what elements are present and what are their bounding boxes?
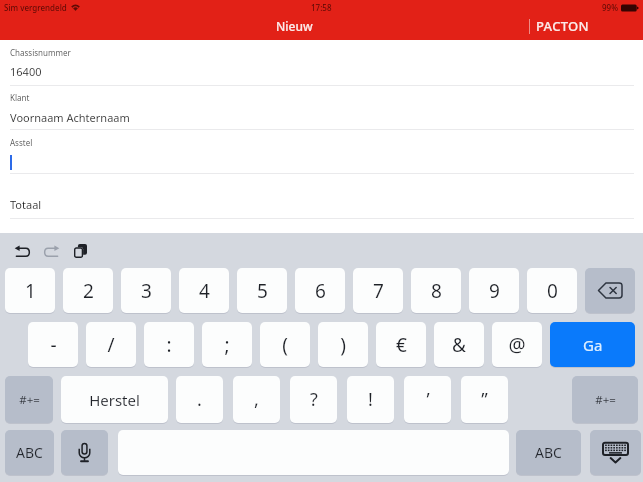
- button[interactable]: ;: [202, 322, 252, 367]
- button[interactable]: #+=: [5, 376, 53, 423]
- button[interactable]: 5: [237, 268, 287, 313]
- staticText: Chassisnummer: [10, 47, 71, 58]
- staticText: :: [166, 332, 172, 358]
- button[interactable]: 7: [353, 268, 403, 313]
- staticText: 8: [431, 278, 442, 304]
- staticText: ”: [481, 387, 488, 412]
- button[interactable]: 4: [179, 268, 229, 313]
- button[interactable]: ’: [404, 376, 451, 423]
- staticText: 6: [315, 278, 326, 304]
- button[interactable]: Herstel: [61, 376, 168, 423]
- staticText: ): [340, 332, 346, 358]
- button[interactable]: !: [347, 376, 394, 423]
- staticText: 99%: [602, 2, 618, 13]
- staticText: ABC: [535, 443, 562, 462]
- staticText: ?: [310, 387, 318, 412]
- button[interactable]: Klant: [10, 86, 634, 129]
- staticText: PACTON: [536, 17, 589, 35]
- staticText: ABC: [16, 443, 43, 462]
- staticText: Voornaam Achternaam: [10, 110, 130, 125]
- staticText: 1: [25, 278, 36, 304]
- button[interactable]: Dictate: [61, 430, 108, 475]
- button[interactable]: &: [434, 322, 484, 367]
- button[interactable]: €: [376, 322, 426, 367]
- staticText: &: [452, 332, 466, 358]
- button[interactable]: Backspace: [585, 268, 635, 313]
- button[interactable]: -: [28, 322, 78, 367]
- staticText: .: [197, 387, 202, 412]
- button[interactable]: :: [144, 322, 194, 367]
- button[interactable]: 2: [63, 268, 113, 313]
- staticText: 17:58: [311, 2, 332, 13]
- staticText: Klant: [10, 92, 30, 103]
- button[interactable]: ”: [461, 376, 508, 423]
- staticText: Asstel: [10, 137, 33, 148]
- staticText: 5: [257, 278, 268, 304]
- staticText: Nieuw: [276, 18, 313, 34]
- button[interactable]: Chassisnummer: [10, 41, 634, 85]
- staticText: !: [368, 387, 373, 412]
- staticText: -: [50, 332, 57, 358]
- staticText: 16400: [10, 64, 42, 79]
- button[interactable]: 8: [411, 268, 461, 313]
- button[interactable]: ABC: [5, 430, 54, 475]
- staticText: 0: [547, 278, 558, 304]
- staticText: #+=: [19, 392, 40, 408]
- button[interactable]: PACTON: [536, 17, 589, 35]
- staticText: 3: [141, 278, 152, 304]
- staticText: ’: [426, 387, 430, 412]
- button[interactable]: ABC: [516, 430, 581, 475]
- button[interactable]: 0: [527, 268, 577, 313]
- button[interactable]: Redo: [41, 243, 61, 259]
- button[interactable]: 1: [5, 268, 55, 313]
- button[interactable]: 3: [121, 268, 171, 313]
- staticText: Ga: [583, 335, 603, 355]
- button[interactable]: ?: [290, 376, 337, 423]
- staticText: 2: [83, 278, 94, 304]
- button[interactable]: ,: [233, 376, 280, 423]
- staticText: Herstel: [89, 390, 140, 410]
- staticText: 4: [199, 278, 210, 304]
- staticText: (: [282, 332, 288, 358]
- button[interactable]: Hide keyboard: [590, 430, 641, 475]
- button[interactable]: #+=: [572, 376, 638, 423]
- button[interactable]: @: [492, 322, 542, 367]
- staticText: ;: [224, 332, 230, 358]
- button[interactable]: .: [176, 376, 223, 423]
- button[interactable]: ): [318, 322, 368, 367]
- button[interactable]: Asstel: [10, 131, 634, 173]
- staticText: Totaal: [10, 197, 42, 212]
- button[interactable]: Undo: [12, 243, 32, 259]
- button[interactable]: Copy: [70, 242, 90, 260]
- staticText: #+=: [595, 392, 616, 408]
- button[interactable]: 9: [469, 268, 519, 313]
- button[interactable]: Totaal: [10, 193, 634, 217]
- button[interactable]: (: [260, 322, 310, 367]
- staticText: 9: [489, 278, 500, 304]
- staticText: /: [107, 332, 115, 358]
- staticText: @: [508, 332, 526, 358]
- button[interactable]: /: [86, 322, 136, 367]
- button[interactable]: 6: [295, 268, 345, 313]
- button[interactable]: Ga: [550, 322, 635, 367]
- staticText: 7: [373, 278, 384, 304]
- staticText: Sim vergrendeld: [4, 2, 67, 13]
- staticText: ,: [254, 387, 259, 412]
- staticText: €: [396, 332, 407, 358]
